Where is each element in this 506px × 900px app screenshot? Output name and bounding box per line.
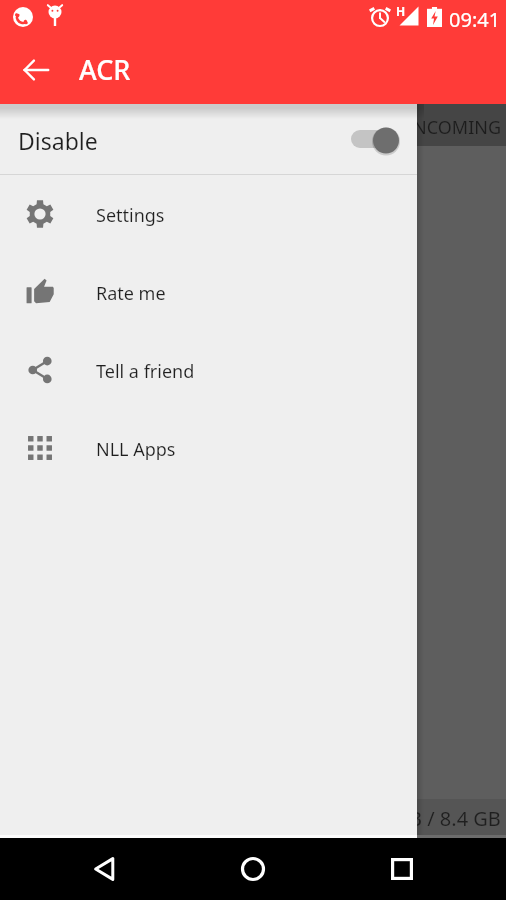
button[interactable]: Home [228, 838, 278, 900]
staticText: 3.1 GB / 8.4 GB [361, 805, 501, 832]
button[interactable]: Back [80, 838, 130, 900]
button[interactable]: Settings [0, 175, 417, 253]
button[interactable]: Tell a friend [0, 331, 417, 409]
staticText: NLL Apps [96, 437, 176, 462]
button[interactable]: Back [12, 46, 60, 94]
staticText: ACR [79, 51, 131, 88]
button[interactable]: Disable [0, 104, 417, 174]
staticText: Settings [96, 203, 165, 228]
staticText: H [396, 3, 406, 19]
staticText: Tell a friend [96, 359, 195, 384]
staticText: 09:41 [449, 6, 501, 33]
button[interactable]: NLL Apps [0, 409, 417, 487]
staticText: INCOMING [407, 115, 502, 140]
button[interactable]: Recent apps [377, 838, 427, 900]
staticText: Disable [18, 125, 98, 156]
staticText: Rate me [96, 281, 166, 306]
button[interactable]: Rate me [0, 253, 417, 331]
